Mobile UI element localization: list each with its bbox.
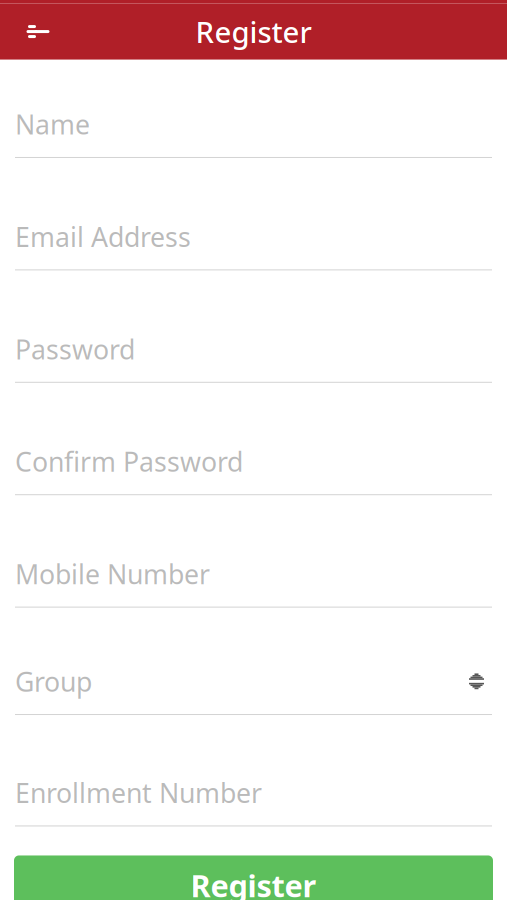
button[interactable]: Group [0,608,507,715]
button[interactable]: Email Address [0,158,507,270]
button[interactable]: Enrollment Number [0,715,507,826]
button[interactable]: Register [14,855,493,900]
button[interactable]: Confirm Password [0,383,507,495]
staticText: Enrollment Number [15,775,262,810]
button[interactable]: Password [0,270,507,383]
staticText: Group [15,664,92,699]
staticText: Confirm Password [15,444,243,479]
button[interactable]: Mobile Number [0,495,507,608]
staticText: Register [195,12,311,51]
staticText: Email Address [15,219,191,254]
staticText: Name [15,107,90,142]
staticText: Mobile Number [15,556,210,592]
button[interactable]: Back [12,10,64,54]
staticText: Register [190,865,316,900]
staticText: Password [15,331,135,367]
button[interactable]: Name [0,60,507,158]
